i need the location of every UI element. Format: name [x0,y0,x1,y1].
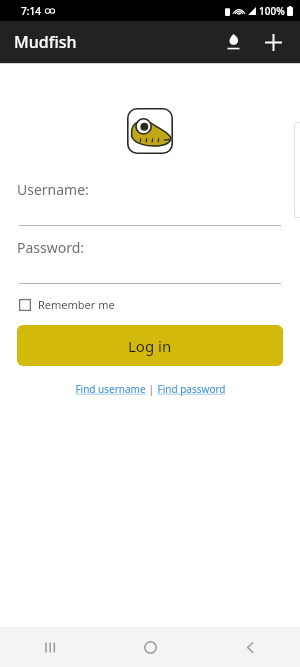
staticText: | [146,382,157,396]
button[interactable]: Log in [17,325,283,366]
button[interactable]: Remember me [19,297,115,312]
staticText: Log in [128,336,172,356]
button[interactable]: Flame [216,25,250,59]
staticText: Mudfish [14,31,77,53]
staticText: 7:14 [21,4,41,18]
staticText: Password: [17,238,85,257]
button[interactable]: Back [200,627,300,667]
button[interactable]: Find username [75,382,146,396]
button[interactable]: Recents [0,627,100,667]
staticText: Username: [17,180,89,199]
staticText: Find password [157,382,226,396]
staticText: Remember me [38,297,115,312]
button[interactable]: Add [256,25,290,59]
staticText: 100% [259,4,285,18]
staticText: Find username [75,382,146,396]
button[interactable]: Find password [157,382,226,396]
button[interactable]: Home [100,627,200,667]
